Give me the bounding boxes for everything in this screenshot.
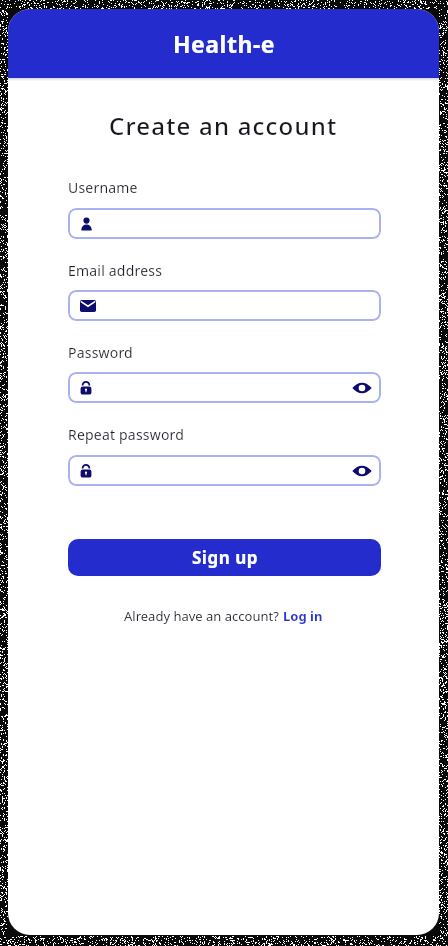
button[interactable]	[68, 455, 381, 486]
staticText: Log in	[283, 607, 323, 625]
staticText: Username	[68, 178, 138, 197]
staticText: Repeat password	[68, 425, 185, 444]
staticText: Already have an account?	[124, 607, 283, 625]
staticText: Health-e	[173, 28, 275, 59]
button[interactable]: Already have an account?	[8, 607, 439, 625]
staticText: Sign up	[192, 546, 258, 569]
button[interactable]	[68, 372, 381, 403]
button[interactable]	[68, 290, 381, 321]
staticText: Password	[68, 343, 133, 362]
button[interactable]	[68, 208, 381, 239]
button[interactable]: Health-e	[8, 9, 439, 78]
staticText: Email address	[68, 261, 163, 280]
button[interactable]: Sign up	[68, 539, 381, 576]
staticText: Create an account	[109, 109, 338, 142]
